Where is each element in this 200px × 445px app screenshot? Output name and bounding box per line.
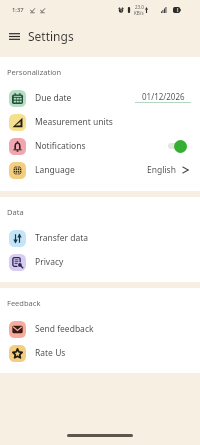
button[interactable]: Language <box>0 158 200 182</box>
staticText: 01/12/2026 <box>142 91 185 102</box>
staticText: Feedback <box>7 298 41 308</box>
staticText: KB/s <box>134 10 144 16</box>
button[interactable]: Measurement units <box>0 110 200 134</box>
staticText: Due date <box>35 92 72 104</box>
button[interactable]: Transfer data <box>0 226 200 250</box>
staticText: Rate Us <box>35 347 66 359</box>
button[interactable]: Send feedback <box>0 317 200 341</box>
button[interactable]: Notifications on <box>168 139 187 153</box>
staticText: Settings <box>28 28 74 44</box>
staticText: Language <box>35 164 75 176</box>
button[interactable]: Due date <box>0 86 200 110</box>
staticText: Measurement units <box>35 116 113 128</box>
button[interactable]: Rate Us <box>0 341 200 365</box>
staticText: Personalization <box>7 67 62 77</box>
staticText: 1:37 <box>12 6 24 14</box>
button[interactable]: Open navigation menu <box>4 26 24 46</box>
button[interactable]: Privacy <box>0 250 200 274</box>
staticText: 23.0 <box>135 4 144 10</box>
staticText: Data <box>7 207 24 217</box>
staticText: English <box>147 164 176 176</box>
staticText: Transfer data <box>35 232 89 244</box>
staticText: Privacy <box>35 256 64 268</box>
button[interactable]: Notifications <box>0 134 200 158</box>
staticText: Send feedback <box>35 323 94 335</box>
staticText: Notifications <box>35 140 86 152</box>
